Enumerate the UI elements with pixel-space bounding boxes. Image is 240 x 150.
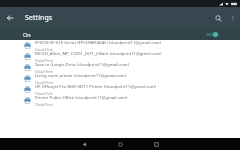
staticText: Save to Google Drive (cloudprint11@gmail… — [35, 62, 129, 68]
staticText: RICOH_Aficio_MP_C2051_OUT_J-Black (cloud… — [35, 51, 162, 57]
button[interactable]: More options — [226, 11, 240, 25]
staticText: Cloud Print — [35, 102, 53, 106]
button[interactable]: Living room printer (cloudprint11@gmail.… — [0, 73, 240, 84]
staticText: Cloud Print — [35, 58, 53, 62]
staticText: Settings — [25, 13, 53, 23]
button[interactable]: RICOH_Aficio_MP_C2051_OUT_J-Black (cloud… — [0, 51, 240, 62]
staticText: Cloud Print — [35, 47, 53, 51]
button[interactable]: Printer Public Office (cloudprint11@gmai… — [0, 95, 240, 106]
button[interactable]: Back — [0, 8, 20, 28]
button[interactable]: Back — [78, 138, 90, 150]
staticText: On — [23, 31, 31, 38]
staticText: Cloud Print — [35, 91, 53, 95]
button[interactable]: HP Officejet Pro 8600 N911 Printer (clou… — [0, 84, 240, 95]
staticText: HP Officejet Pro 8600 N911 Printer (clou… — [35, 84, 156, 90]
button[interactable]: Home — [114, 138, 126, 150]
button[interactable]: Recent apps — [150, 138, 162, 150]
button[interactable]: Search — [210, 10, 226, 26]
button[interactable]: Save to Google Drive (cloudprint11@gmail… — [0, 62, 240, 73]
button[interactable]: EPSON XP-610 Series (EPSON8F4EAC) (cloud… — [0, 40, 240, 51]
staticText: Cloud Print — [35, 69, 53, 73]
staticText: Printer Public Office (cloudprint11@gmai… — [35, 95, 128, 101]
staticText: EPSON XP-610 Series (EPSON8F4EAC) (cloud… — [35, 40, 161, 46]
staticText: Living room printer (cloudprint11@gmail.… — [35, 73, 127, 79]
button[interactable]: On — [0, 28, 240, 40]
staticText: Cloud Print — [35, 80, 53, 84]
